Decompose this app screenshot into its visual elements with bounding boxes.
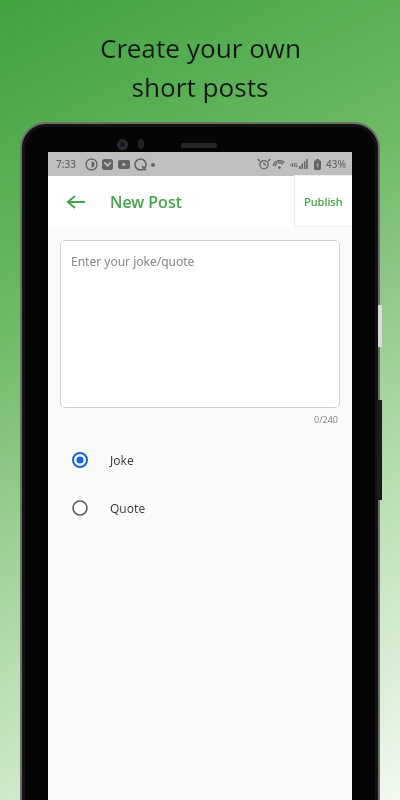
staticText: 7:33 [56,157,76,171]
staticText: New Post [110,191,182,213]
staticText: Joke [110,452,134,468]
staticText: Quote [110,500,146,516]
button[interactable]: Quote [48,493,352,523]
staticText: 0/240 [314,413,338,425]
staticText: 4G [290,161,298,169]
staticText: Create your own [100,30,301,65]
staticText: 43% [326,157,346,171]
staticText: Enter your joke/quote [71,253,195,269]
staticText: short posts [131,69,269,104]
button[interactable]: Back [56,182,96,222]
button[interactable]: Enter your joke/quote [60,240,340,408]
button[interactable]: Joke [48,445,352,475]
button[interactable]: Publish [295,176,352,226]
staticText: Publish [304,194,343,209]
